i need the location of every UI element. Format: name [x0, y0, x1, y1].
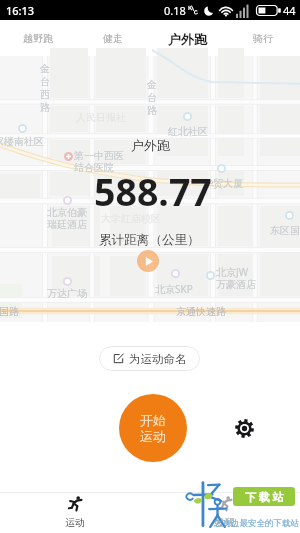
button[interactable]: 户外跑 — [150, 20, 225, 56]
staticText: 累计距离（公里） — [99, 232, 200, 248]
staticText: 健走 — [103, 32, 123, 45]
button[interactable]: 发现 — [190, 492, 260, 533]
staticText: 红北社区 — [168, 125, 208, 138]
staticText: 北京JW 万豪酒店 — [216, 265, 256, 291]
button[interactable]: 健走 — [75, 20, 150, 56]
button[interactable]: 开始 运动 — [119, 394, 187, 462]
staticText: 下 载 站 — [245, 489, 284, 504]
staticText: 路 — [147, 104, 157, 117]
staticText: 开始 运动 — [140, 412, 166, 445]
button[interactable]: 骑行 — [225, 20, 300, 56]
button[interactable]: Settings — [222, 406, 266, 450]
staticText: 北京伯豪 瑞廷酒店 — [47, 206, 87, 231]
staticText: 家楼南社区 — [0, 135, 44, 148]
staticText: 第一中西医 结合医院 — [74, 149, 124, 174]
staticText: 路 — [40, 101, 50, 114]
staticText: 东区国 — [270, 224, 300, 237]
staticText: 国路 — [0, 305, 19, 318]
staticText: 16:13 — [6, 3, 35, 18]
staticText: 华贸大厦 — [203, 177, 243, 190]
staticText: 金 — [147, 78, 157, 91]
staticText: 台 — [147, 91, 157, 104]
staticText: 44 — [283, 3, 296, 18]
staticText: 台 — [40, 75, 50, 88]
staticText: 大学红庙校区 — [101, 212, 161, 225]
staticText: 骑行 — [253, 32, 273, 45]
staticText: 金 — [40, 62, 50, 75]
staticText: 户外跑 — [131, 137, 170, 153]
staticText: 人民日报社 — [76, 111, 126, 124]
staticText: 发现 — [215, 516, 235, 529]
button[interactable]: 为运动命名 — [99, 346, 200, 371]
staticText: 588.77 — [94, 166, 212, 217]
staticText: 万达广场 — [47, 287, 87, 300]
staticText: 越野跑 — [23, 32, 53, 45]
staticText: 京通快速路 — [176, 305, 226, 318]
staticText: 为运动命名 — [129, 352, 187, 366]
staticText: 0.18 — [164, 3, 186, 18]
button[interactable]: 运动 — [40, 492, 110, 533]
staticText: 户外跑 — [168, 31, 207, 47]
staticText: 您身边最安全的下载站 — [214, 518, 299, 529]
staticText: 西 — [40, 88, 50, 101]
button[interactable]: Current location — [137, 250, 159, 272]
staticText: 运动 — [65, 516, 85, 529]
button[interactable]: 越野跑 — [0, 20, 75, 56]
staticText: 北京SKP — [155, 282, 193, 296]
